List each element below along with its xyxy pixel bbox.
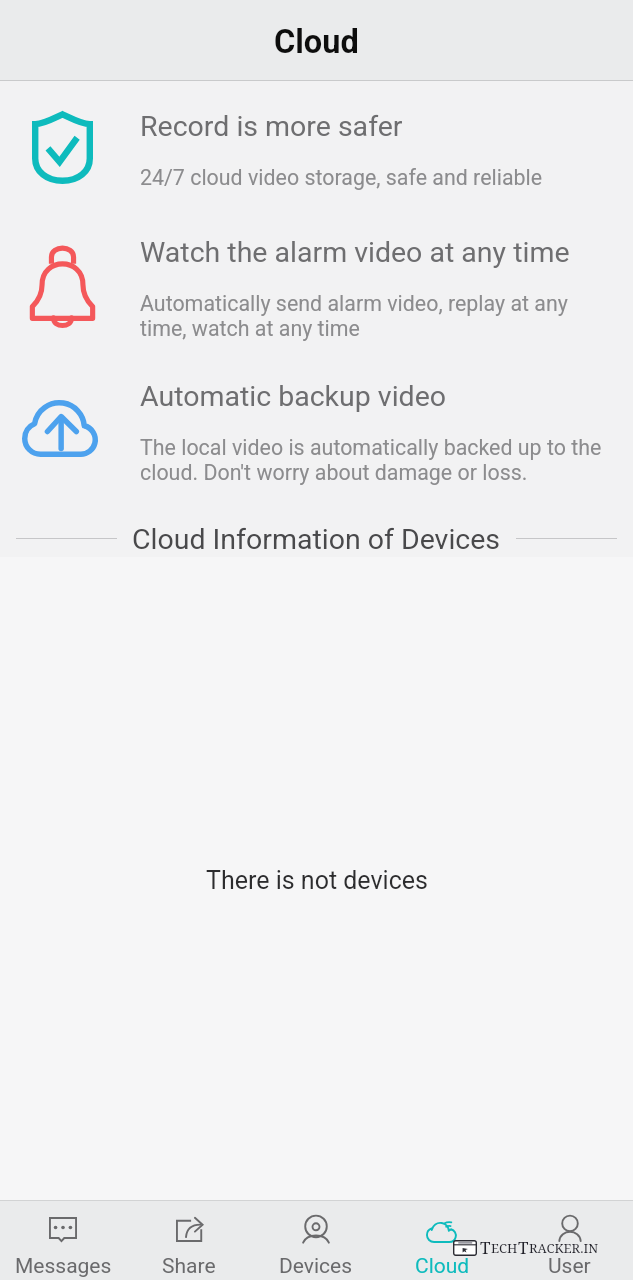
staticText: Cloud Information of Devices: [132, 523, 501, 556]
staticText: Cloud: [415, 1254, 470, 1279]
staticText: User: [548, 1254, 591, 1279]
staticText: Record is more safer: [140, 110, 403, 143]
staticText: RACKER.IN: [529, 1239, 599, 1257]
staticText: T: [518, 1236, 529, 1259]
staticText: T: [480, 1236, 491, 1259]
staticText: Cloud: [274, 23, 359, 61]
staticText: Automatically send alarm video, replay a…: [140, 291, 568, 341]
staticText: 24/7 cloud video storage, safe and relia…: [140, 165, 543, 190]
button[interactable]: Cloud: [379, 1201, 506, 1280]
staticText: The local video is automatically backed …: [140, 435, 602, 485]
staticText: Automatic backup video: [140, 380, 447, 413]
staticText: There is not devices: [206, 866, 428, 895]
button[interactable]: Share: [126, 1201, 252, 1280]
button[interactable]: Devices: [252, 1201, 379, 1280]
staticText: ECH: [491, 1239, 518, 1257]
button[interactable]: Messages: [0, 1201, 126, 1280]
staticText: Messages: [15, 1254, 112, 1279]
staticText: Share: [162, 1254, 216, 1279]
staticText: Devices: [279, 1254, 353, 1279]
button[interactable]: User: [506, 1201, 633, 1280]
staticText: Watch the alarm video at any time: [140, 236, 570, 269]
